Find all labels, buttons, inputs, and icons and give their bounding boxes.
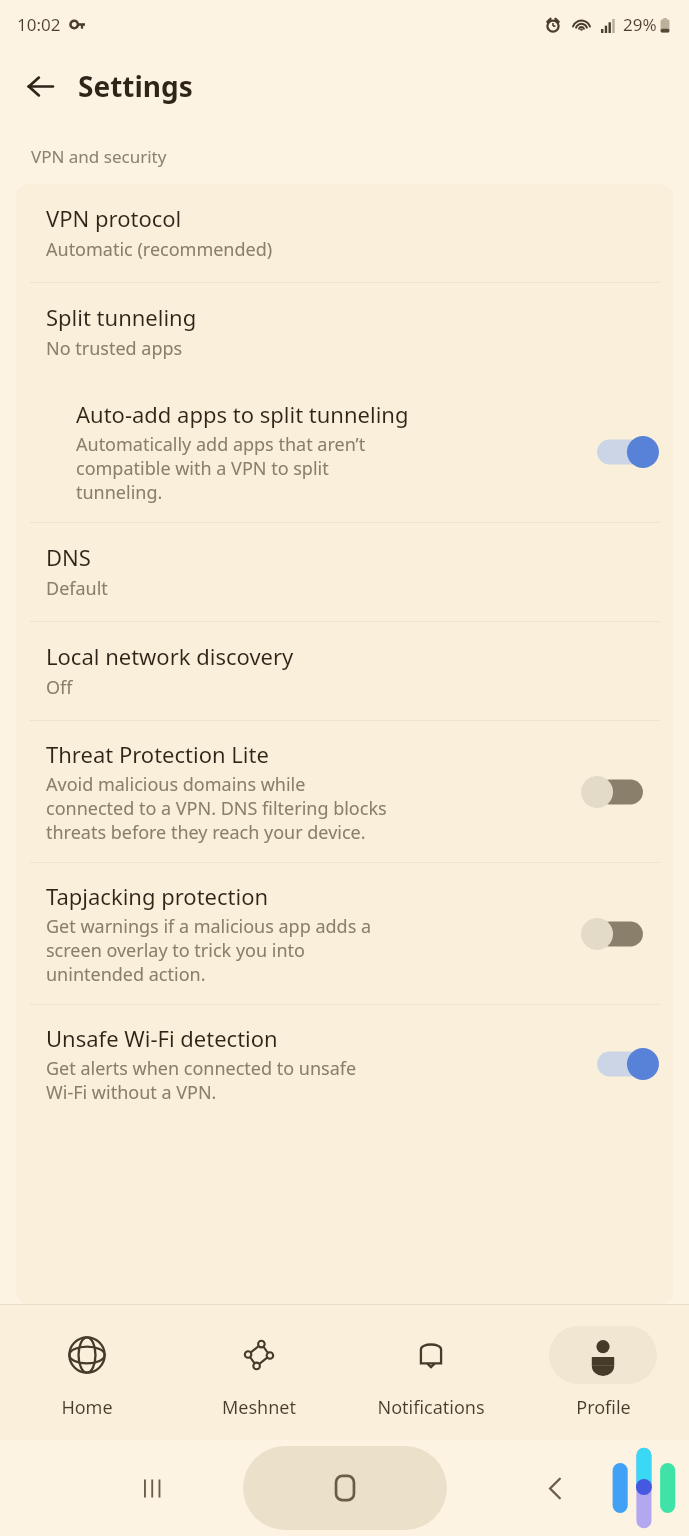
staticText: 10:02	[17, 13, 61, 36]
staticText: 29%	[623, 13, 657, 36]
staticText: Home	[61, 1395, 113, 1420]
button[interactable]: Auto-add apps to split tunneling	[16, 381, 673, 522]
button[interactable]: Home	[243, 1446, 447, 1530]
staticText: Off	[46, 675, 73, 700]
button[interactable]: Back	[531, 1464, 579, 1512]
staticText: Profile	[576, 1395, 631, 1420]
button[interactable]: Unsafe Wi-Fi detection	[16, 1005, 673, 1122]
staticText: Auto-add apps to split tunneling	[76, 399, 409, 429]
button[interactable]: Profile	[517, 1305, 689, 1440]
staticText: Default	[46, 576, 108, 601]
button[interactable]: Tapjacking protection	[16, 863, 673, 1004]
staticText: VPN and security	[31, 145, 167, 168]
button[interactable]: DNS	[16, 523, 673, 621]
staticText: Avoid malicious domains while connected …	[46, 772, 387, 844]
staticText: Settings	[78, 67, 193, 105]
button[interactable]: Recents	[128, 1464, 176, 1512]
button[interactable]: Switch on	[589, 1044, 651, 1084]
button[interactable]: Notifications	[345, 1305, 517, 1440]
staticText: Split tunneling	[46, 302, 197, 332]
button[interactable]: Switch on	[589, 432, 651, 472]
staticText: DNS	[46, 542, 91, 572]
staticText: Automatic (recommended)	[46, 237, 273, 262]
staticText: Tapjacking protection	[46, 881, 269, 911]
button[interactable]: Home	[0, 1305, 173, 1440]
staticText: Local network discovery	[46, 641, 294, 671]
button[interactable]: Meshnet	[173, 1305, 345, 1440]
staticText: VPN protocol	[46, 203, 182, 233]
button[interactable]: Switch off	[589, 772, 651, 812]
button[interactable]: Local network discovery	[16, 622, 673, 720]
button[interactable]: Split tunneling	[16, 283, 673, 381]
button[interactable]: Back	[12, 58, 68, 114]
staticText: Unsafe Wi-Fi detection	[46, 1023, 278, 1053]
staticText: Get alerts when connected to unsafe Wi-F…	[46, 1056, 357, 1104]
staticText: Automatically add apps that aren’t compa…	[76, 432, 366, 504]
button[interactable]: VPN protocol	[16, 184, 673, 282]
staticText: Get warnings if a malicious app adds a s…	[46, 914, 372, 986]
button[interactable]: Threat Protection Lite	[16, 721, 673, 862]
staticText: Threat Protection Lite	[46, 739, 269, 769]
button[interactable]: Switch off	[589, 914, 651, 954]
staticText: No trusted apps	[46, 336, 183, 361]
staticText: Notifications	[377, 1395, 485, 1420]
staticText: Meshnet	[222, 1395, 296, 1420]
